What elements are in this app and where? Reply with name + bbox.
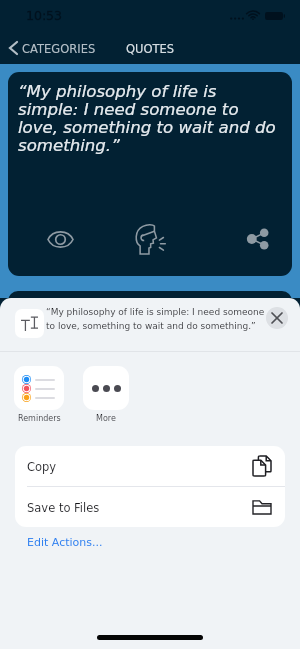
button[interactable]: Reminders [14, 366, 64, 423]
staticText: QUOTES [126, 42, 175, 55]
staticText: Edit Actions... [27, 536, 103, 549]
button[interactable]: More [83, 366, 129, 423]
staticText: CATEGORIES [22, 42, 96, 55]
button[interactable]: CATEGORIES [4, 36, 104, 60]
button[interactable]: Edit Actions... [27, 536, 103, 549]
staticText: Copy [27, 460, 57, 473]
button[interactable]: Copy [15, 446, 285, 486]
staticText: More [96, 414, 116, 423]
button[interactable]: Speak [133, 221, 169, 257]
staticText: Save to Files [27, 501, 100, 514]
button[interactable]: Save to Files [15, 487, 285, 527]
staticText: “My philosophy of life is simple: I need… [18, 82, 280, 154]
staticText: 10:53 [26, 8, 63, 23]
staticText: Reminders [18, 414, 61, 423]
button[interactable]: Views [42, 221, 78, 257]
staticText: “My philosophy of life is simple: I need… [46, 304, 268, 332]
button[interactable]: Close [266, 307, 288, 329]
button[interactable]: Share [240, 221, 276, 257]
